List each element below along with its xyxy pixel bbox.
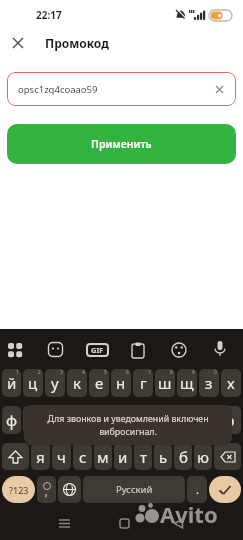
staticText: 2	[38, 369, 41, 376]
button[interactable]: д	[177, 406, 197, 434]
button[interactable]: ь	[154, 443, 172, 470]
staticText: 8	[170, 369, 173, 376]
button[interactable]	[57, 518, 73, 530]
staticText: к	[73, 373, 81, 393]
staticText: 1	[16, 369, 19, 376]
staticText: 4	[82, 369, 85, 376]
staticText: я	[36, 447, 45, 467]
button[interactable]	[8, 33, 28, 53]
staticText: 9	[192, 369, 195, 376]
button[interactable]: с	[73, 443, 92, 470]
button[interactable]: щ	[177, 369, 197, 397]
staticText: opsc1zq4coaao59	[18, 83, 98, 96]
staticText: а	[73, 410, 82, 430]
staticText: н	[116, 373, 126, 393]
button[interactable]: р	[111, 406, 131, 434]
staticText: в	[51, 410, 60, 430]
staticText: Промокод	[45, 35, 109, 51]
staticText: Русский	[116, 483, 153, 496]
staticText: 6	[126, 369, 129, 376]
button[interactable]: я	[31, 443, 50, 470]
button[interactable]	[48, 342, 64, 358]
button[interactable]	[171, 342, 187, 358]
staticText: ш	[158, 373, 172, 393]
staticText: ю	[197, 447, 209, 467]
button[interactable]: opsc1zq4coaao59	[7, 72, 236, 106]
staticText: Для звонков и уведомлений включен виброс…	[47, 413, 209, 438]
button[interactable]	[172, 517, 186, 531]
button[interactable]	[214, 341, 226, 358]
staticText: GIF	[91, 345, 104, 355]
staticText: о	[139, 410, 148, 430]
staticText: .	[196, 482, 199, 497]
button[interactable]	[214, 443, 241, 470]
staticText: т	[140, 447, 147, 467]
button[interactable]: ч	[52, 443, 71, 470]
button[interactable]: к	[67, 369, 87, 397]
button[interactable]: GIF	[86, 343, 109, 357]
button[interactable]	[7, 342, 23, 358]
button[interactable]: ш	[155, 369, 175, 397]
button[interactable]: .	[187, 476, 207, 503]
staticText: ф	[6, 410, 18, 430]
button[interactable]	[118, 517, 132, 531]
staticText: е	[95, 373, 104, 393]
button[interactable]: е	[89, 369, 109, 397]
staticText: ь	[159, 447, 168, 467]
staticText: 3	[60, 369, 63, 376]
button[interactable]: о	[133, 406, 153, 434]
staticText: 22:17	[36, 8, 62, 22]
button[interactable]: й	[2, 369, 21, 397]
button[interactable]	[58, 476, 81, 503]
staticText: м	[97, 447, 109, 467]
button[interactable]: и	[114, 443, 132, 470]
staticText: д	[182, 410, 192, 430]
button[interactable]	[37, 476, 56, 503]
button[interactable]: ж	[199, 406, 219, 434]
staticText: ?123	[9, 484, 29, 496]
staticText: п	[94, 410, 104, 430]
staticText: с	[79, 447, 87, 467]
button[interactable]: х	[221, 369, 241, 397]
button[interactable]: Применить	[7, 124, 236, 164]
button[interactable]: ?123	[2, 476, 35, 503]
button[interactable]: ф	[2, 406, 21, 434]
button[interactable]: а	[67, 406, 87, 434]
button[interactable]: т	[134, 443, 152, 470]
staticText: 7	[148, 369, 151, 376]
button[interactable]: п	[89, 406, 109, 434]
button[interactable]	[131, 342, 145, 358]
button[interactable]: б	[174, 443, 192, 470]
staticText: щ	[180, 373, 194, 393]
button[interactable]: л	[155, 406, 175, 434]
staticText: й	[7, 373, 17, 393]
button[interactable]: Русский	[83, 476, 185, 503]
staticText: Применить	[91, 137, 152, 151]
staticText: э	[227, 410, 235, 430]
staticText: и	[118, 447, 128, 467]
staticText: б	[179, 447, 188, 467]
staticText: у	[51, 373, 59, 393]
button[interactable]: н	[111, 369, 131, 397]
button[interactable]: э	[221, 406, 241, 434]
button[interactable]	[209, 476, 241, 503]
button[interactable]: в	[45, 406, 65, 434]
button[interactable]: м	[94, 443, 112, 470]
button[interactable]: ц	[23, 369, 43, 397]
button[interactable]	[2, 443, 29, 470]
button[interactable]: ы	[23, 406, 43, 434]
button[interactable]: г	[133, 369, 153, 397]
staticText: ц	[28, 373, 38, 393]
button[interactable]: з	[199, 369, 219, 397]
staticText: Avito	[160, 499, 218, 529]
button[interactable]: ю	[194, 443, 212, 470]
staticText: х	[227, 373, 235, 393]
staticText: ж	[203, 410, 215, 430]
staticText: г	[140, 373, 147, 393]
staticText: 5	[104, 369, 107, 376]
staticText: з	[205, 373, 213, 393]
button[interactable]: у	[45, 369, 65, 397]
staticText: ч	[57, 447, 66, 467]
staticText: 0	[214, 369, 217, 376]
